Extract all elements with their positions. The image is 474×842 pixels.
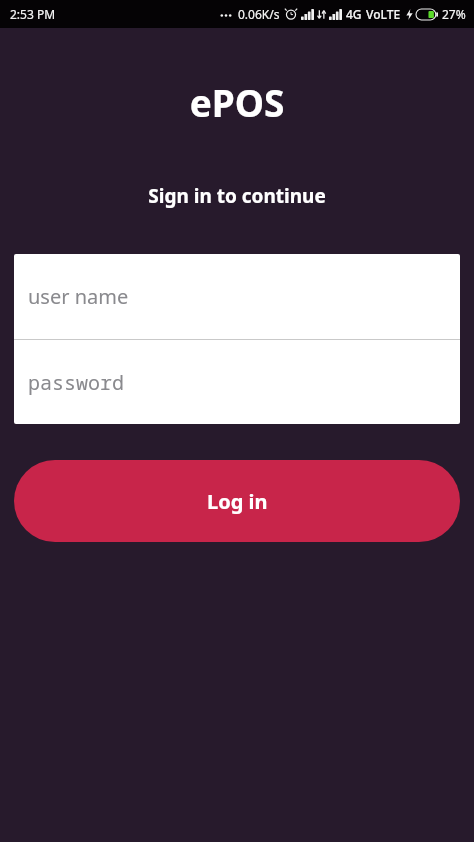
- staticText: ePOS: [0, 77, 474, 127]
- staticText: 2:53 PM: [10, 6, 56, 22]
- button[interactable]: Log in: [14, 460, 460, 542]
- staticText: Sign in to continue: [0, 183, 474, 209]
- staticText: 4G: [346, 6, 362, 22]
- staticText: password: [28, 369, 124, 396]
- staticText: Log in: [207, 488, 268, 515]
- staticText: 0.06K/s: [238, 6, 280, 22]
- button[interactable]: user name: [14, 254, 460, 339]
- staticText: user name: [28, 283, 129, 310]
- staticText: VoLTE: [366, 6, 401, 22]
- staticText: 27%: [442, 6, 466, 22]
- button[interactable]: password: [14, 340, 460, 424]
